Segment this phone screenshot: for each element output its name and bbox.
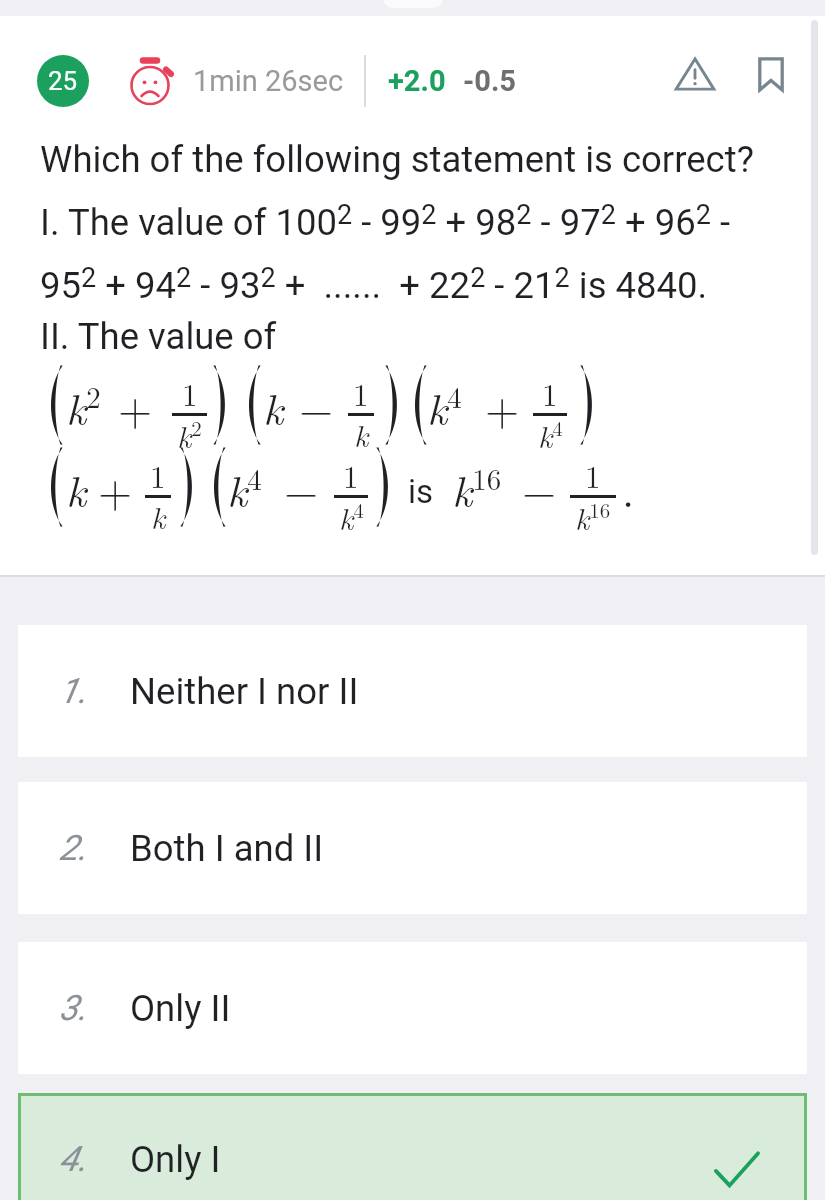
staticText: 3. <box>59 988 88 1029</box>
staticText: Neither I nor II <box>130 670 359 713</box>
staticText: + <box>98 457 133 519</box>
staticText: 1 <box>343 453 359 497</box>
staticText: k2 <box>177 412 202 457</box>
staticText: k <box>151 494 166 538</box>
staticText: 1 <box>182 371 198 415</box>
staticText: k2 <box>66 375 101 437</box>
staticText: 25 <box>48 66 78 96</box>
button[interactable]: 1. <box>18 625 807 757</box>
staticText: II. The value of <box>40 315 277 358</box>
staticText: is <box>408 472 434 511</box>
staticText: + <box>118 375 153 437</box>
staticText: 2. <box>59 828 88 869</box>
staticText: − <box>522 457 557 519</box>
staticText: +2.0 <box>388 64 446 98</box>
staticText: − <box>284 457 319 519</box>
staticText: 1. <box>59 671 88 712</box>
staticText: 4. <box>59 1139 88 1180</box>
staticText: k <box>263 375 284 437</box>
staticText: k4 <box>339 494 364 539</box>
button[interactable]: Report question <box>667 48 723 100</box>
button[interactable]: 3. <box>18 942 807 1074</box>
staticText: 1 <box>150 453 166 497</box>
staticText: k16 <box>452 457 502 519</box>
button[interactable]: 2. <box>18 782 807 914</box>
staticText: 952 + 942 - 932 + ...... + 222 - 212 is … <box>40 262 708 306</box>
button[interactable]: Bookmark <box>743 48 799 100</box>
staticText: I. The value of 1002 - 992 + 982 - 972 +… <box>40 199 731 243</box>
staticText: k4 <box>227 457 262 519</box>
staticText: . <box>622 457 635 519</box>
staticText: k <box>66 457 87 519</box>
staticText: 1 <box>585 453 601 497</box>
staticText: Both I and II <box>130 827 324 870</box>
button[interactable]: 25 <box>37 55 89 107</box>
staticText: 1 <box>353 371 369 415</box>
staticText: Only I <box>130 1138 221 1181</box>
staticText: k4 <box>427 375 462 437</box>
staticText: − <box>299 375 334 437</box>
staticText: 1min 26sec <box>193 64 344 98</box>
staticText: Only II <box>130 987 231 1030</box>
staticText: + <box>485 375 520 437</box>
staticText: -0.5 <box>463 64 516 98</box>
staticText: k16 <box>575 494 611 539</box>
staticText: 1 <box>542 371 558 415</box>
button[interactable]: 4. <box>18 1093 807 1200</box>
staticText: Which of the following statement is corr… <box>40 138 754 181</box>
staticText: k <box>354 412 369 456</box>
staticText: k4 <box>538 412 563 457</box>
